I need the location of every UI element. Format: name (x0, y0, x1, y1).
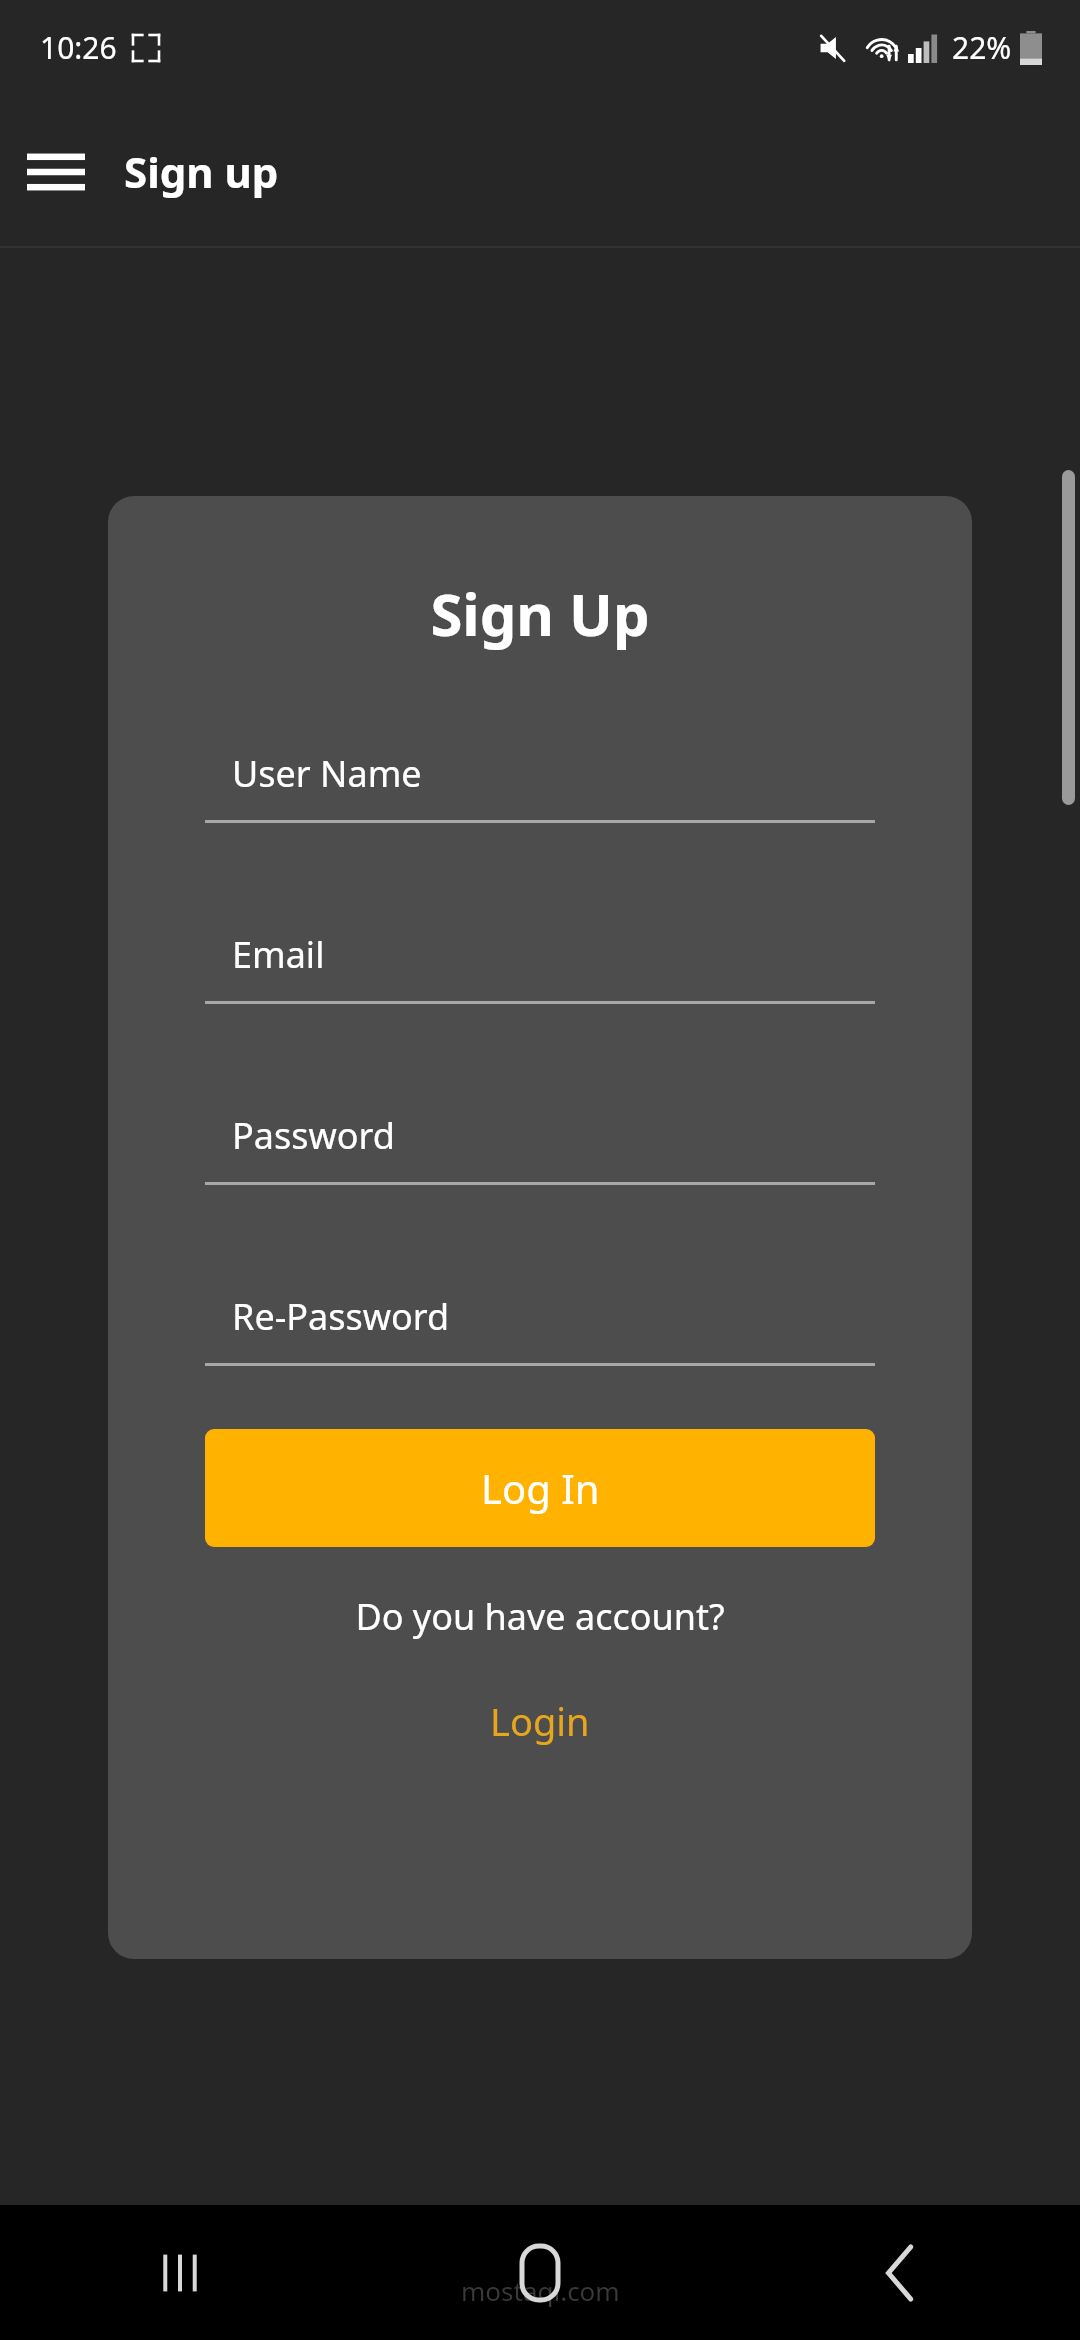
staticText: Re-Password (232, 1292, 450, 1341)
button[interactable]: Log In (205, 1429, 875, 1547)
staticText: User Name (232, 749, 422, 798)
staticText: mostaql.com (461, 2273, 620, 2308)
staticText: Email (232, 930, 325, 979)
button[interactable]: Login (472, 1689, 608, 1753)
button[interactable]: Recent apps (0, 2205, 360, 2340)
button[interactable]: Email (205, 930, 875, 1004)
staticText: Sign up (124, 143, 279, 200)
staticText: Login (490, 1695, 590, 1747)
staticText: Password (232, 1111, 395, 1160)
staticText: 22% (952, 27, 1012, 68)
button[interactable]: Back (720, 2205, 1080, 2340)
button[interactable]: User Name (205, 749, 875, 823)
button[interactable]: Re-Password (205, 1292, 875, 1366)
staticText: Sign Up (108, 574, 972, 653)
staticText: 10:26 (40, 27, 117, 68)
button[interactable]: Open navigation menu (20, 136, 92, 208)
staticText: Log In (481, 1461, 600, 1515)
button[interactable]: Home (360, 2205, 720, 2340)
button[interactable]: Password (205, 1111, 875, 1185)
staticText: Do you have account? (108, 1592, 972, 1641)
